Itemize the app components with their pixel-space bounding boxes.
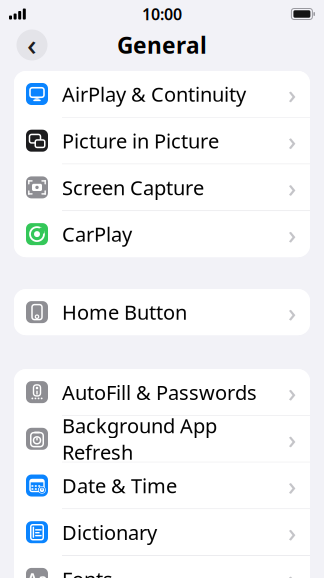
staticText: Home Button xyxy=(62,299,187,325)
staticText: Dictionary xyxy=(62,519,157,545)
staticText: CarPlay xyxy=(62,221,132,247)
button[interactable]: Date & Time xyxy=(14,462,310,509)
staticText: AutoFill & Passwords xyxy=(62,379,257,405)
staticText: Fonts xyxy=(62,566,113,578)
staticText: AirPlay & Continuity xyxy=(62,81,246,107)
staticText: › xyxy=(288,124,296,157)
button[interactable]: Dictionary xyxy=(14,509,310,556)
staticText: › xyxy=(288,171,296,204)
staticText: › xyxy=(288,295,296,329)
staticText: › xyxy=(288,422,296,456)
staticText: Aa xyxy=(27,568,47,578)
staticText: Picture in Picture xyxy=(62,127,219,154)
staticText: › xyxy=(288,77,296,111)
staticText: Background App Refresh xyxy=(62,412,217,465)
button[interactable]: Aa xyxy=(14,556,310,578)
button[interactable]: AutoFill & Passwords xyxy=(14,369,310,416)
button[interactable]: CarPlay xyxy=(14,211,310,257)
button[interactable]: Back xyxy=(14,27,50,63)
button[interactable]: AirPlay & Continuity xyxy=(14,71,310,118)
staticText: › xyxy=(288,375,296,409)
button[interactable]: Background App Refresh xyxy=(14,416,310,462)
staticText: Date & Time xyxy=(62,472,177,499)
staticText: › xyxy=(288,217,296,251)
staticText: General xyxy=(117,30,207,60)
staticText: › xyxy=(288,515,296,549)
staticText: ‹ xyxy=(27,24,37,63)
button[interactable]: Screen Capture xyxy=(14,164,310,211)
staticText: Screen Capture xyxy=(62,174,204,201)
button[interactable]: Picture in Picture xyxy=(14,118,310,164)
staticText: › xyxy=(288,562,296,578)
staticText: 10:00 xyxy=(142,3,182,25)
button[interactable]: Home Button xyxy=(14,289,310,335)
staticText: › xyxy=(288,469,296,502)
